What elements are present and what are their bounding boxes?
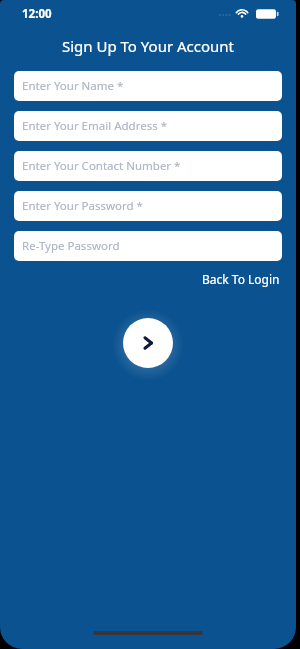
button[interactable]: Submit sign up (123, 318, 173, 368)
staticText: Enter Your Email Address * (22, 118, 167, 134)
staticText: 12:00 (22, 6, 52, 22)
staticText: Enter Your Password * (22, 198, 143, 214)
button[interactable]: Enter Your Contact Number * (14, 151, 282, 181)
staticText: Back To Login (202, 271, 280, 287)
staticText: Re-Type Password (22, 238, 120, 254)
staticText: Enter Your Name * (22, 78, 124, 94)
button[interactable]: Back To Login (200, 269, 282, 289)
button[interactable]: Enter Your Password * (14, 191, 282, 221)
button[interactable]: Enter Your Email Address * (14, 111, 282, 141)
button[interactable]: Re-Type Password (14, 231, 282, 261)
button[interactable]: Enter Your Name * (14, 71, 282, 101)
staticText: Enter Your Contact Number * (22, 158, 181, 174)
staticText: Sign Up To Your Account (14, 36, 282, 56)
